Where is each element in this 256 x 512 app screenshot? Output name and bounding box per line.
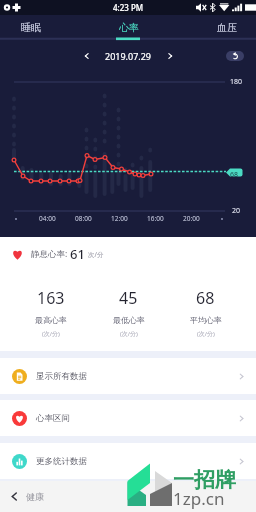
staticText: 最高心率: [35, 315, 67, 325]
staticText: 16:00: [147, 214, 164, 223]
staticText: 静息心率:: [31, 248, 70, 260]
staticText: 20: [232, 206, 241, 216]
button[interactable]: Next day: [162, 48, 178, 64]
staticText: 1zp.cn: [173, 487, 225, 510]
staticText: 更多统计数据: [36, 456, 87, 467]
staticText: 2019.07.29: [105, 50, 152, 62]
button[interactable]: Refresh: [226, 51, 244, 61]
staticText: 180: [230, 77, 243, 87]
button[interactable]: 心率: [108, 15, 149, 39]
staticText: 心率区间: [36, 413, 70, 424]
staticText: (次/分): [42, 330, 60, 338]
staticText: 次/分: [88, 250, 104, 259]
button[interactable]: Previous day: [79, 48, 95, 64]
button[interactable]: 健康: [0, 481, 256, 512]
staticText: 心率: [119, 21, 139, 34]
staticText: 61: [70, 245, 85, 263]
staticText: (次/分): [120, 330, 138, 338]
staticText: 一招牌: [173, 467, 236, 493]
button[interactable]: 血压: [206, 15, 247, 39]
staticText: 163: [37, 287, 65, 309]
button[interactable]: 心率区间: [0, 400, 256, 436]
button[interactable]: 显示所有数据: [0, 358, 256, 394]
staticText: 20:00: [183, 214, 200, 223]
staticText: (次/分): [197, 330, 215, 338]
staticText: 45: [119, 287, 138, 309]
staticText: 4:23 PM: [113, 2, 144, 13]
staticText: 平均心率: [190, 315, 222, 325]
staticText: 68: [230, 170, 239, 180]
staticText: 08:00: [75, 214, 92, 223]
staticText: 睡眠: [21, 21, 41, 34]
button[interactable]: 睡眠: [10, 15, 51, 39]
staticText: 04:00: [39, 214, 56, 223]
staticText: 血压: [217, 21, 237, 34]
staticText: 显示所有数据: [36, 371, 87, 382]
staticText: 12:00: [111, 214, 128, 223]
staticText: 最低心率: [113, 315, 145, 325]
staticText: 健康: [26, 491, 44, 502]
button[interactable]: 更多统计数据: [0, 443, 256, 479]
staticText: 68: [196, 287, 215, 309]
